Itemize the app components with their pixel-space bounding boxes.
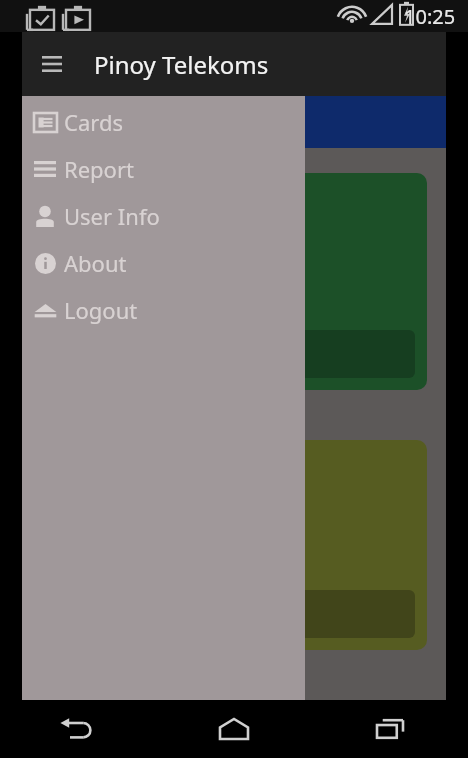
button[interactable]: 0: [41, 173, 427, 390]
staticText: Pinoy Telekoms: [94, 48, 269, 81]
button[interactable]: About: [22, 239, 305, 286]
staticText: Report: [64, 154, 134, 184]
staticText: Cards: [64, 107, 123, 137]
button[interactable]: Open navigation drawer: [30, 42, 74, 86]
staticText: User Info: [64, 201, 160, 231]
button[interactable]: Report: [22, 145, 305, 192]
staticText: About: [64, 248, 127, 278]
button[interactable]: User Info: [22, 192, 305, 239]
button[interactable]: Logout: [22, 286, 305, 333]
button[interactable]: Recent apps: [312, 700, 468, 758]
button[interactable]: Home: [156, 700, 312, 758]
staticText: 10:25: [404, 3, 456, 30]
button[interactable]: 0.0: [41, 440, 427, 650]
staticText: Logout: [64, 295, 138, 325]
button[interactable]: Back: [0, 700, 156, 758]
button[interactable]: Cards: [22, 98, 305, 145]
staticText: free for personal use: [26, 718, 212, 744]
